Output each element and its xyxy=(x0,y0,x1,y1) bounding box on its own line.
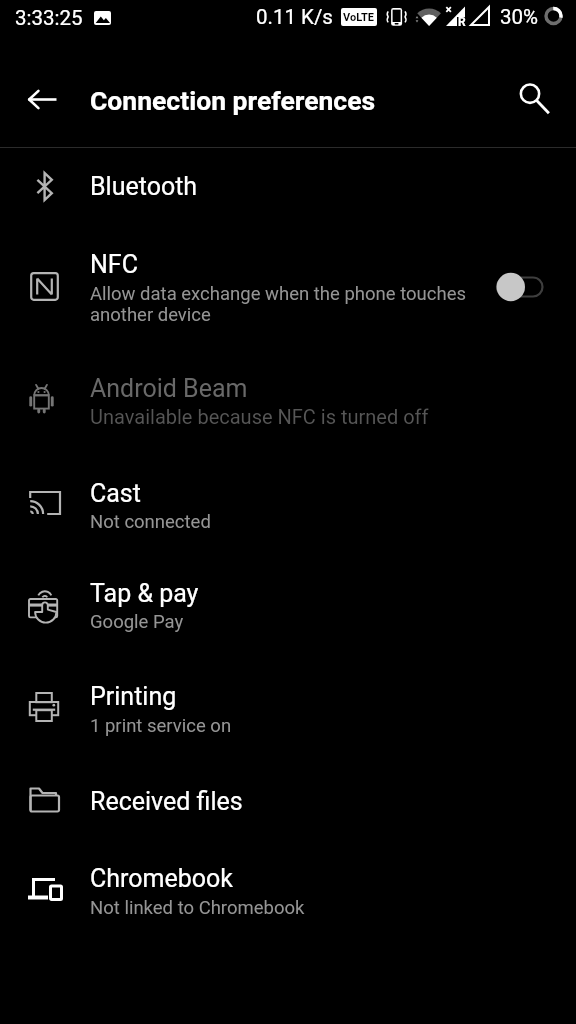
staticText: 30% xyxy=(500,5,539,29)
staticText: Unavailable because NFC is turned off xyxy=(90,405,429,428)
staticText: Allow data exchange when the phone touch… xyxy=(90,283,466,305)
button[interactable]: Search xyxy=(512,76,559,123)
staticText: Connection preferences xyxy=(90,85,376,116)
button[interactable] xyxy=(0,250,576,362)
staticText: NFC xyxy=(90,250,138,279)
button[interactable] xyxy=(0,554,576,657)
staticText: Received files xyxy=(90,787,243,816)
button[interactable] xyxy=(0,362,576,452)
button[interactable]: NFC switch xyxy=(480,263,556,311)
staticText: Bluetooth xyxy=(90,172,198,201)
staticText: R xyxy=(458,15,466,29)
staticText: 0.11 K/s xyxy=(256,5,333,29)
staticText: VoLTE xyxy=(343,11,375,24)
staticText: Tap & pay xyxy=(90,579,199,608)
staticText: Not connected xyxy=(90,511,211,533)
button[interactable]: Back xyxy=(19,76,65,122)
staticText: Not linked to Chromebook xyxy=(90,897,305,919)
button[interactable] xyxy=(0,148,576,250)
staticText: Chromebook xyxy=(90,864,233,893)
staticText: Android Beam xyxy=(90,374,248,403)
staticText: Cast xyxy=(90,479,141,508)
button[interactable] xyxy=(0,452,576,554)
staticText: Google Pay xyxy=(90,611,184,633)
staticText: another device xyxy=(90,304,211,326)
staticText: 3:33:25 xyxy=(15,6,83,30)
button[interactable] xyxy=(0,657,576,758)
staticText: 1 print service on xyxy=(90,715,232,737)
button[interactable] xyxy=(0,843,576,945)
button[interactable] xyxy=(0,758,576,843)
staticText: Printing xyxy=(90,682,177,711)
